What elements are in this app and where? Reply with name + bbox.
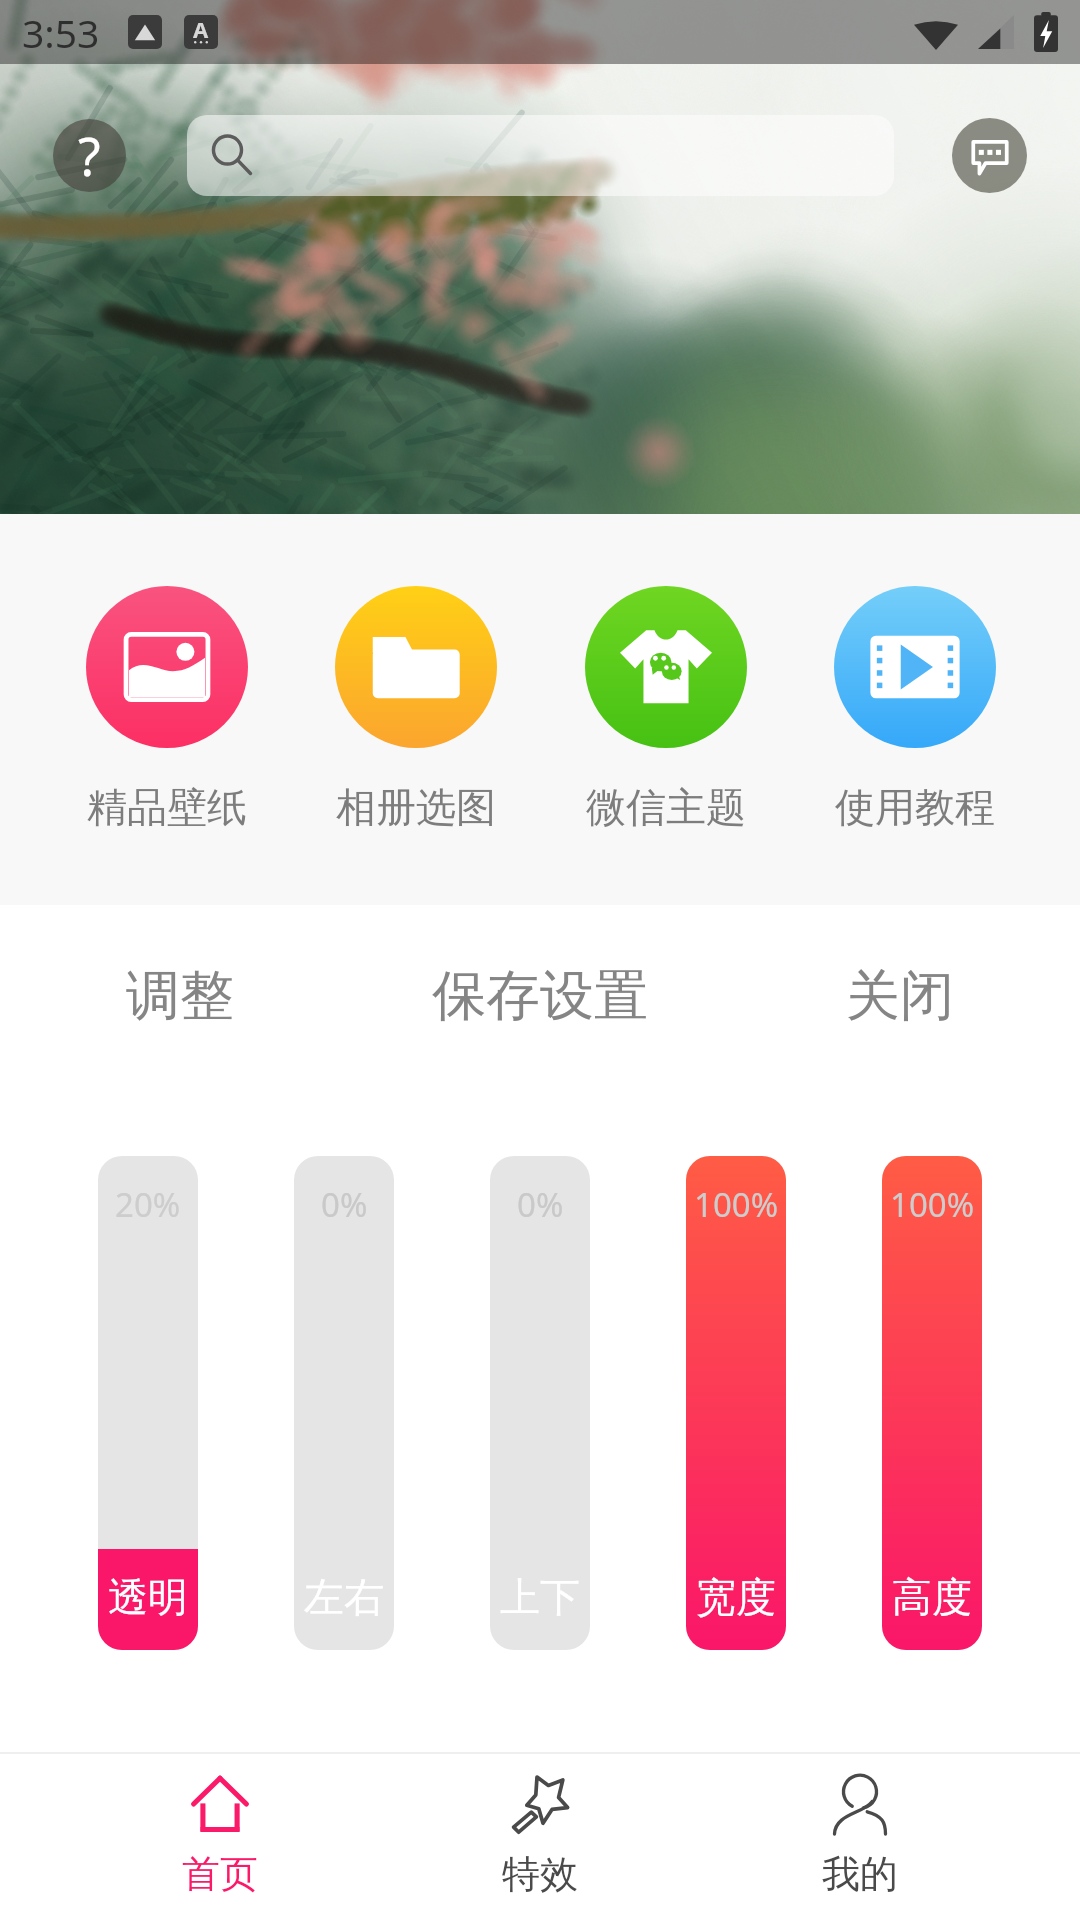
button[interactable]: Help [53, 119, 126, 192]
button[interactable]: 保存设置 [360, 905, 720, 1087]
staticText: 左右 [304, 1572, 384, 1622]
staticText: 关闭 [846, 962, 954, 1030]
staticText: 100% [890, 1182, 975, 1227]
staticText: 保存设置 [432, 962, 648, 1030]
button[interactable]: 100% [882, 1156, 982, 1650]
button[interactable]: 调整 [0, 905, 360, 1087]
button[interactable]: 首页 [145, 1754, 295, 1920]
staticText: 调整 [126, 962, 234, 1030]
button[interactable]: 我的 [785, 1754, 935, 1920]
button[interactable]: 相册选图 [335, 514, 497, 832]
button[interactable]: Search [187, 115, 894, 196]
staticText: 透明 [108, 1572, 188, 1622]
staticText: 3:53 [22, 6, 100, 59]
button[interactable]: 20% [98, 1156, 198, 1650]
staticText: 首页 [182, 1850, 258, 1898]
staticText: 宽度 [696, 1572, 776, 1622]
staticText: 20% [115, 1182, 181, 1227]
staticText: 上下 [500, 1572, 580, 1622]
staticText: 精品壁纸 [87, 782, 247, 832]
staticText: A [193, 14, 209, 44]
button[interactable]: 0% [490, 1156, 590, 1650]
button[interactable]: 关闭 [720, 905, 1080, 1087]
button[interactable]: 0% [294, 1156, 394, 1650]
staticText: 特效 [502, 1850, 578, 1898]
staticText: 我的 [822, 1850, 898, 1898]
staticText: 高度 [892, 1572, 972, 1622]
button[interactable]: 使用教程 [834, 514, 996, 832]
staticText: 微信主题 [586, 782, 746, 832]
staticText: 相册选图 [336, 782, 496, 832]
button[interactable]: 微信主题 [585, 514, 747, 832]
button[interactable]: 100% [686, 1156, 786, 1650]
staticText: ? [78, 120, 101, 191]
staticText: 100% [694, 1182, 779, 1227]
button[interactable]: 特效 [465, 1754, 615, 1920]
button[interactable]: Messages [952, 118, 1027, 193]
staticText: 0% [321, 1182, 368, 1227]
staticText: 0% [517, 1182, 564, 1227]
staticText: 使用教程 [835, 782, 995, 832]
button[interactable]: 精品壁纸 [86, 514, 248, 832]
